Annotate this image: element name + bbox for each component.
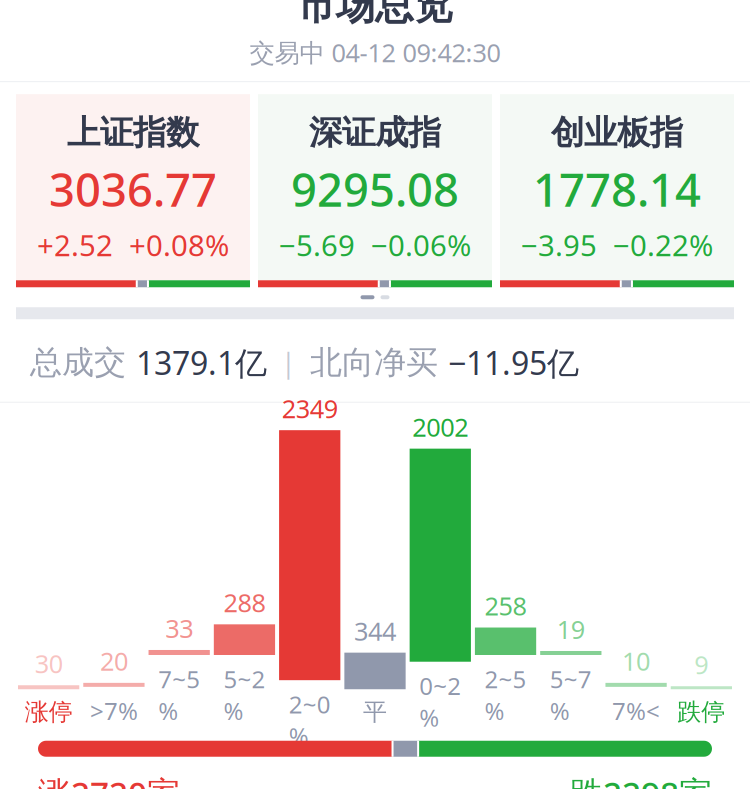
staticText: −5.69 bbox=[279, 225, 355, 264]
staticText: 上证指数 bbox=[67, 112, 199, 153]
staticText: −0.22% bbox=[613, 225, 713, 264]
staticText: 2349 bbox=[282, 391, 338, 425]
staticText: 2002 bbox=[412, 410, 468, 444]
staticText: 交易中 04-12 09:42:30 bbox=[249, 35, 500, 69]
staticText: 跌停 bbox=[677, 697, 725, 727]
button[interactable]: 深证成指 bbox=[258, 94, 492, 287]
staticText: 市场总览 bbox=[297, 0, 453, 29]
staticText: 5~7% bbox=[550, 663, 592, 727]
staticText: 33 bbox=[165, 611, 193, 645]
staticText: 19 bbox=[557, 612, 585, 646]
staticText: 344 bbox=[354, 614, 396, 648]
staticText: 9295.08 bbox=[291, 159, 459, 219]
button[interactable]: 上证指数 bbox=[16, 94, 250, 287]
staticText: 288 bbox=[223, 586, 265, 619]
staticText: 9 bbox=[694, 648, 708, 681]
staticText: 跌2298家 bbox=[570, 771, 712, 789]
staticText: 30 bbox=[35, 647, 63, 680]
staticText: 2~5% bbox=[484, 663, 526, 727]
staticText: 平 bbox=[363, 697, 387, 727]
staticText: >7% bbox=[90, 695, 138, 727]
staticText: +2.52 bbox=[37, 225, 113, 264]
staticText: 20 bbox=[100, 644, 128, 678]
staticText: 涨2720家 bbox=[38, 771, 180, 789]
staticText: −3.95 bbox=[521, 225, 597, 264]
staticText: 258 bbox=[484, 589, 526, 622]
staticText: 7~5% bbox=[158, 663, 200, 727]
staticText: −11.95亿 bbox=[448, 341, 579, 384]
staticText: 3036.77 bbox=[49, 159, 217, 219]
staticText: 1778.14 bbox=[533, 159, 701, 219]
staticText: 10 bbox=[622, 644, 650, 678]
staticText: 总成交 bbox=[30, 343, 136, 382]
staticText: 1379.1亿 bbox=[136, 341, 267, 384]
staticText: | bbox=[267, 345, 310, 380]
staticText: 创业板指 bbox=[551, 112, 683, 153]
staticText: +0.08% bbox=[129, 225, 229, 264]
staticText: −0.06% bbox=[371, 225, 471, 264]
staticText: 涨停 bbox=[25, 697, 73, 727]
staticText: 5~2% bbox=[223, 663, 265, 727]
staticText: 0~2% bbox=[419, 670, 461, 733]
staticText: 北向净买 bbox=[310, 343, 448, 382]
button[interactable]: 创业板指 bbox=[500, 94, 734, 287]
staticText: 深证成指 bbox=[309, 112, 441, 153]
staticText: 2~0% bbox=[289, 688, 331, 752]
staticText: 7%< bbox=[612, 695, 660, 727]
